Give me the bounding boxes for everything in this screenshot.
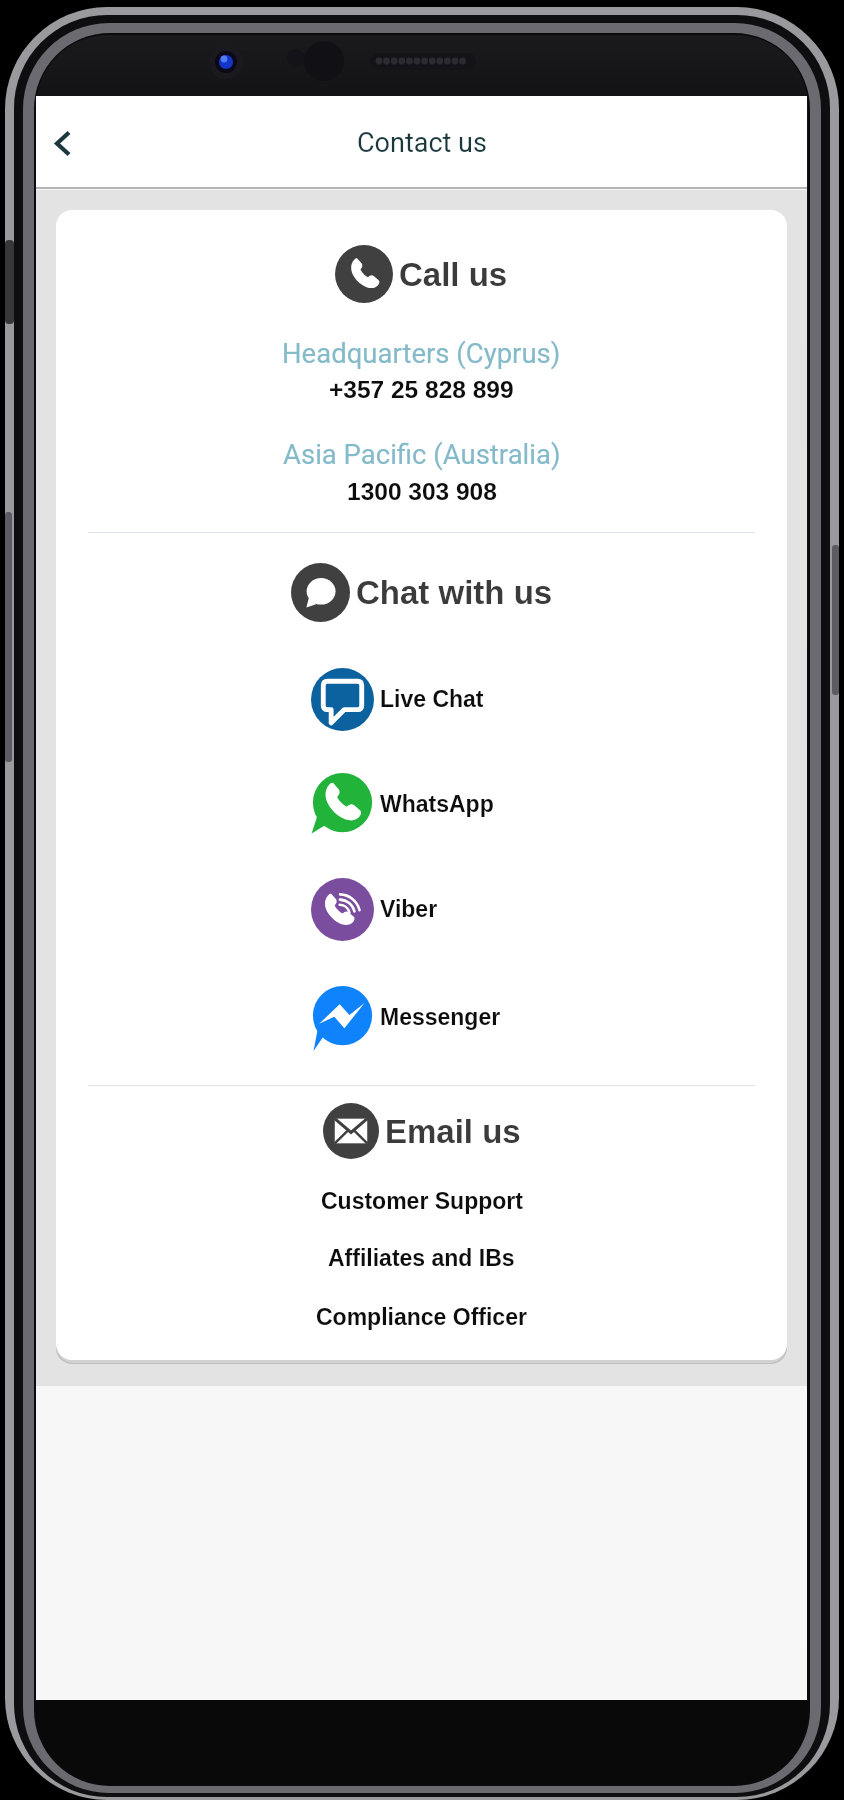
staticText: Asia Pacific (Australia) <box>283 438 561 470</box>
button[interactable]: Affiliates and IBs <box>56 1236 787 1280</box>
button[interactable]: Customer Support <box>56 1179 787 1223</box>
button[interactable]: Compliance Officer <box>56 1295 787 1339</box>
staticText: Live Chat <box>380 686 484 712</box>
staticText: Compliance Officer <box>316 1304 527 1330</box>
button[interactable]: Messenger <box>56 980 787 1054</box>
staticText: Customer Support <box>321 1188 523 1214</box>
button[interactable]: Live Chat <box>56 662 787 736</box>
staticText: Viber <box>380 896 438 922</box>
staticText: WhatsApp <box>380 791 494 817</box>
staticText: Email us <box>385 1113 521 1150</box>
button[interactable]: WhatsApp <box>56 767 787 841</box>
staticText: Messenger <box>380 1004 501 1030</box>
staticText: Chat with us <box>356 574 553 611</box>
button[interactable]: Viber <box>56 872 787 946</box>
staticText: Contact us <box>357 127 487 159</box>
staticText: +357 25 828 899 <box>329 376 514 403</box>
staticText: Affiliates and IBs <box>328 1245 515 1271</box>
staticText: Call us <box>399 256 508 293</box>
staticText: 1300 303 908 <box>347 478 497 505</box>
staticText: Headquarters (Cyprus) <box>282 337 561 369</box>
button[interactable]: Back <box>27 109 95 177</box>
